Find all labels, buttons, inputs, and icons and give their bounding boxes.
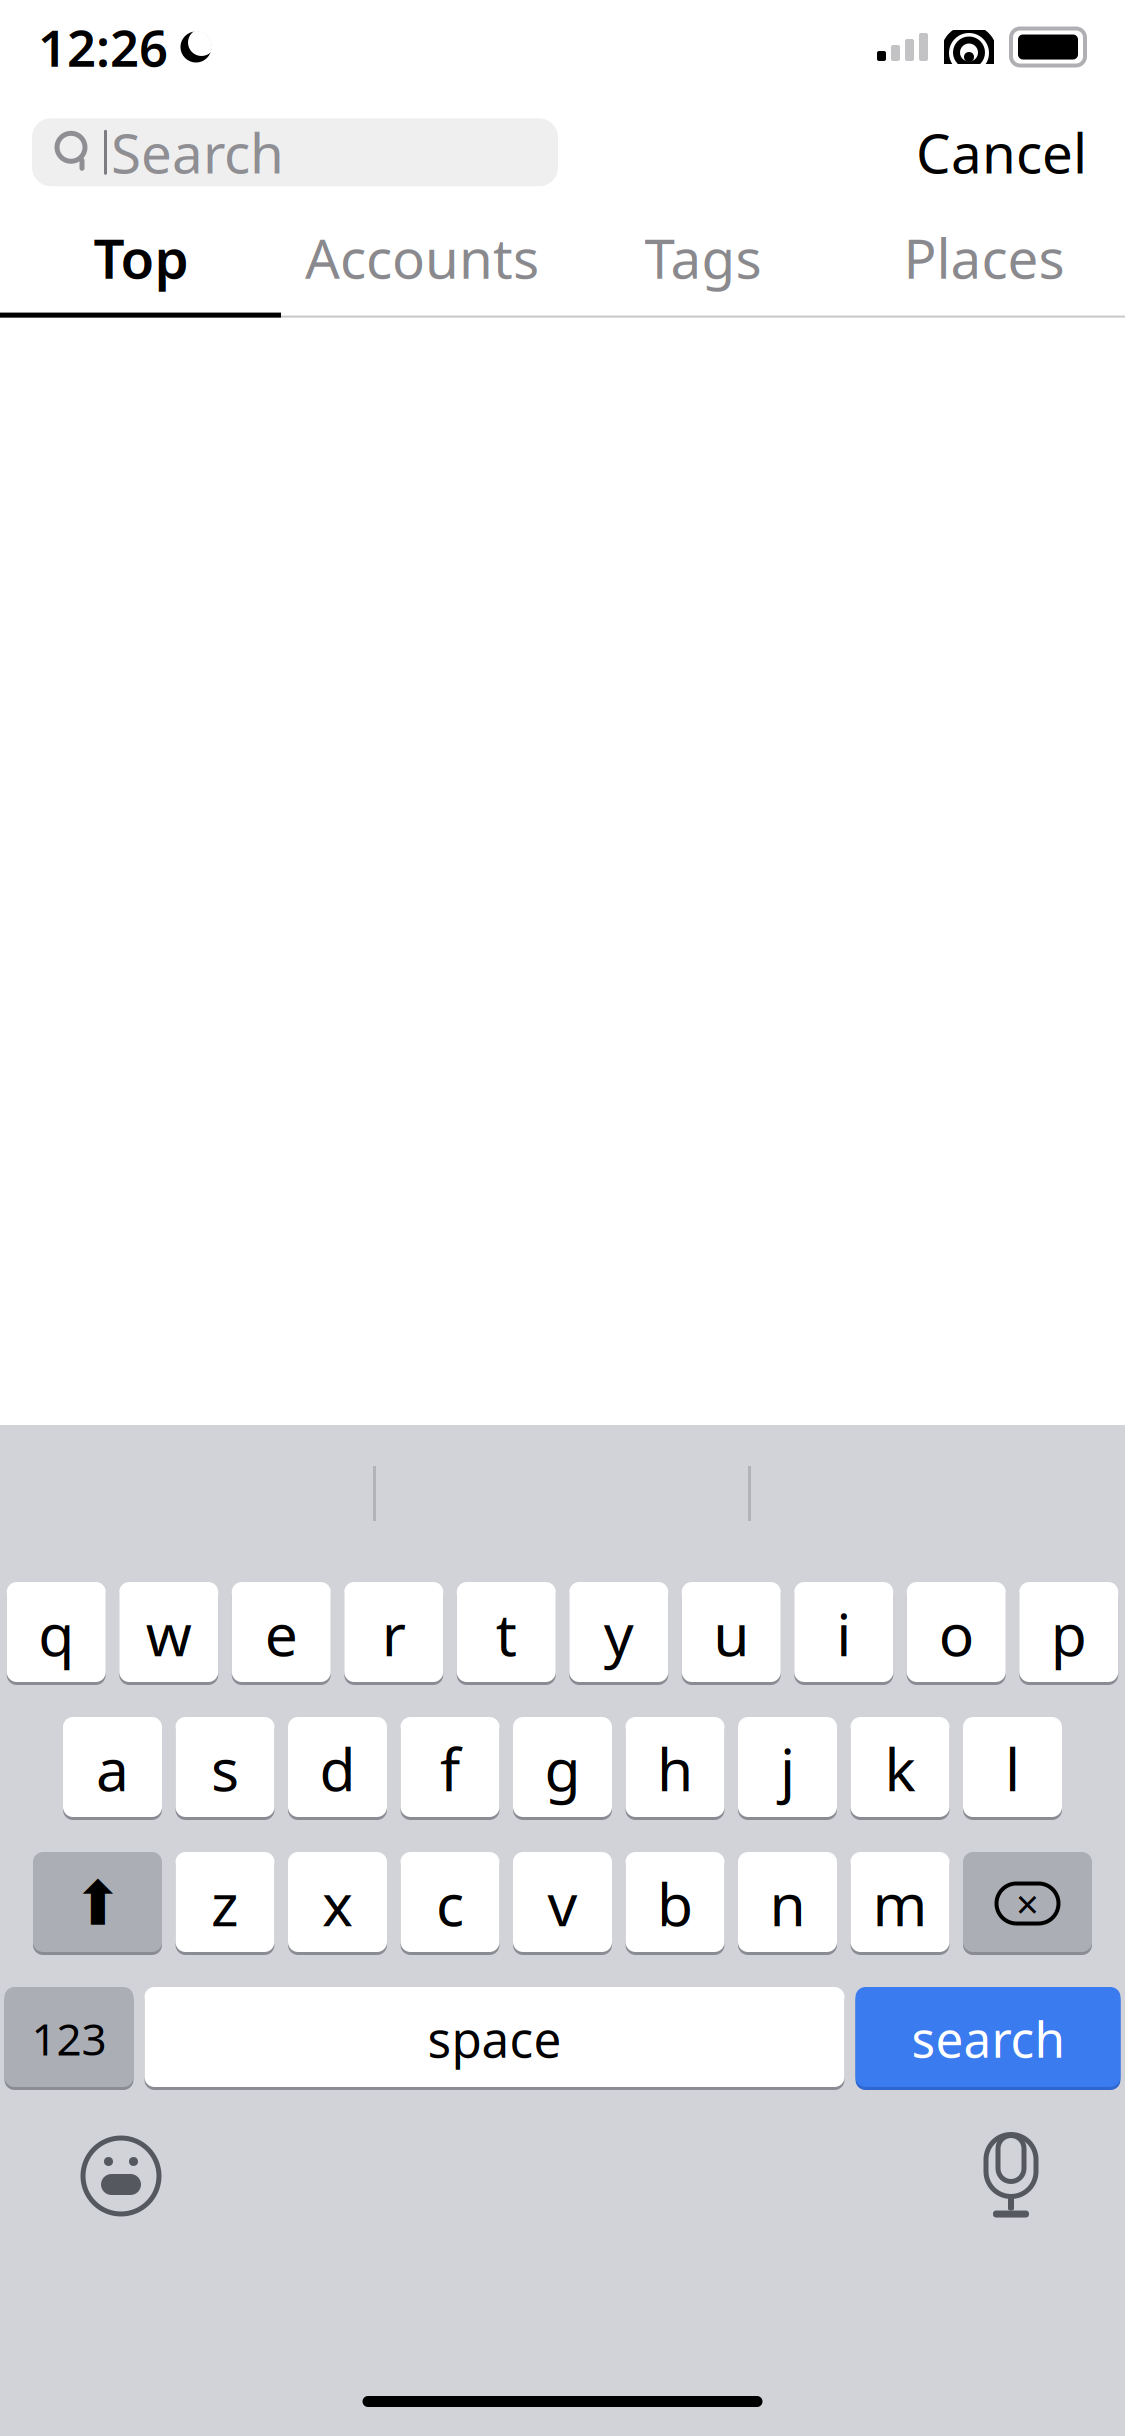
button[interactable]: x	[288, 1852, 387, 1955]
button[interactable]: o	[907, 1582, 1006, 1685]
staticText: b	[657, 1864, 693, 1942]
staticText: j	[780, 1729, 795, 1807]
button[interactable]: Accounts	[281, 225, 562, 291]
staticText: f	[440, 1729, 460, 1807]
staticText: s	[211, 1729, 239, 1807]
button[interactable]: Emoji	[80, 2135, 162, 2217]
button[interactable]: q	[7, 1582, 106, 1685]
staticText: p	[1051, 1594, 1087, 1672]
button[interactable]: b	[625, 1852, 724, 1955]
button[interactable]: Shift	[33, 1852, 162, 1955]
staticText: Search	[111, 116, 284, 189]
button[interactable]: r	[344, 1582, 443, 1685]
button[interactable]: s	[175, 1717, 274, 1820]
staticText: h	[657, 1729, 693, 1807]
staticText: v	[547, 1864, 577, 1942]
staticText: g	[544, 1729, 580, 1807]
staticText: a	[96, 1729, 129, 1807]
staticText: n	[769, 1864, 805, 1942]
staticText: y	[604, 1594, 634, 1672]
button[interactable]: space	[144, 1987, 844, 2090]
staticText: q	[38, 1594, 74, 1672]
staticText: 123	[31, 2009, 106, 2068]
staticText: 12:26	[38, 13, 168, 81]
staticText: d	[319, 1729, 355, 1807]
button[interactable]: p	[1019, 1582, 1118, 1685]
staticText: w	[146, 1594, 192, 1672]
button[interactable]: k	[850, 1717, 949, 1820]
staticText: e	[265, 1594, 298, 1672]
button[interactable]: v	[513, 1852, 612, 1955]
staticText: search	[911, 2006, 1064, 2071]
staticText: i	[836, 1594, 851, 1672]
button[interactable]: Tags	[562, 225, 843, 291]
staticText: r	[382, 1594, 406, 1672]
button[interactable]: y	[569, 1582, 668, 1685]
button[interactable]: Delete	[963, 1852, 1092, 1955]
button[interactable]: j	[738, 1717, 837, 1820]
staticText: ×	[1016, 1877, 1039, 1930]
staticText: Accounts	[305, 221, 539, 294]
button[interactable]: t	[457, 1582, 556, 1685]
staticText: Top	[93, 221, 188, 294]
button[interactable]: c	[400, 1852, 499, 1955]
button[interactable]: f	[400, 1717, 499, 1820]
button[interactable]: n	[738, 1852, 837, 1955]
button[interactable]: Dictation	[983, 2132, 1039, 2220]
staticText: ⬆	[72, 1869, 123, 1938]
button[interactable]: d	[288, 1717, 387, 1820]
staticText: l	[1005, 1729, 1020, 1807]
button[interactable]: u	[682, 1582, 781, 1685]
button[interactable]: z	[175, 1852, 274, 1955]
staticText: Cancel	[916, 116, 1087, 189]
button[interactable]: a	[63, 1717, 162, 1820]
button[interactable]: e	[232, 1582, 331, 1685]
button[interactable]: 123	[4, 1987, 133, 2090]
staticText: u	[713, 1594, 749, 1672]
staticText: Tags	[644, 221, 761, 294]
button[interactable]: w	[119, 1582, 218, 1685]
button[interactable]: Top	[0, 225, 281, 291]
button[interactable]: search	[855, 1987, 1120, 2090]
button[interactable]: l	[963, 1717, 1062, 1820]
button[interactable]: i	[794, 1582, 893, 1685]
staticText: space	[427, 2006, 561, 2071]
staticText: o	[939, 1594, 974, 1672]
button[interactable]: Places	[843, 225, 1124, 291]
staticText: c	[436, 1864, 464, 1942]
staticText: Places	[903, 221, 1064, 294]
staticText: z	[211, 1864, 239, 1942]
button[interactable]: h	[625, 1717, 724, 1820]
staticText: k	[884, 1729, 915, 1807]
button[interactable]: g	[513, 1717, 612, 1820]
button[interactable]: m	[850, 1852, 949, 1955]
button[interactable]: Cancel	[904, 102, 1099, 203]
staticText: t	[496, 1594, 517, 1672]
staticText: x	[322, 1864, 353, 1942]
staticText: m	[872, 1864, 927, 1942]
